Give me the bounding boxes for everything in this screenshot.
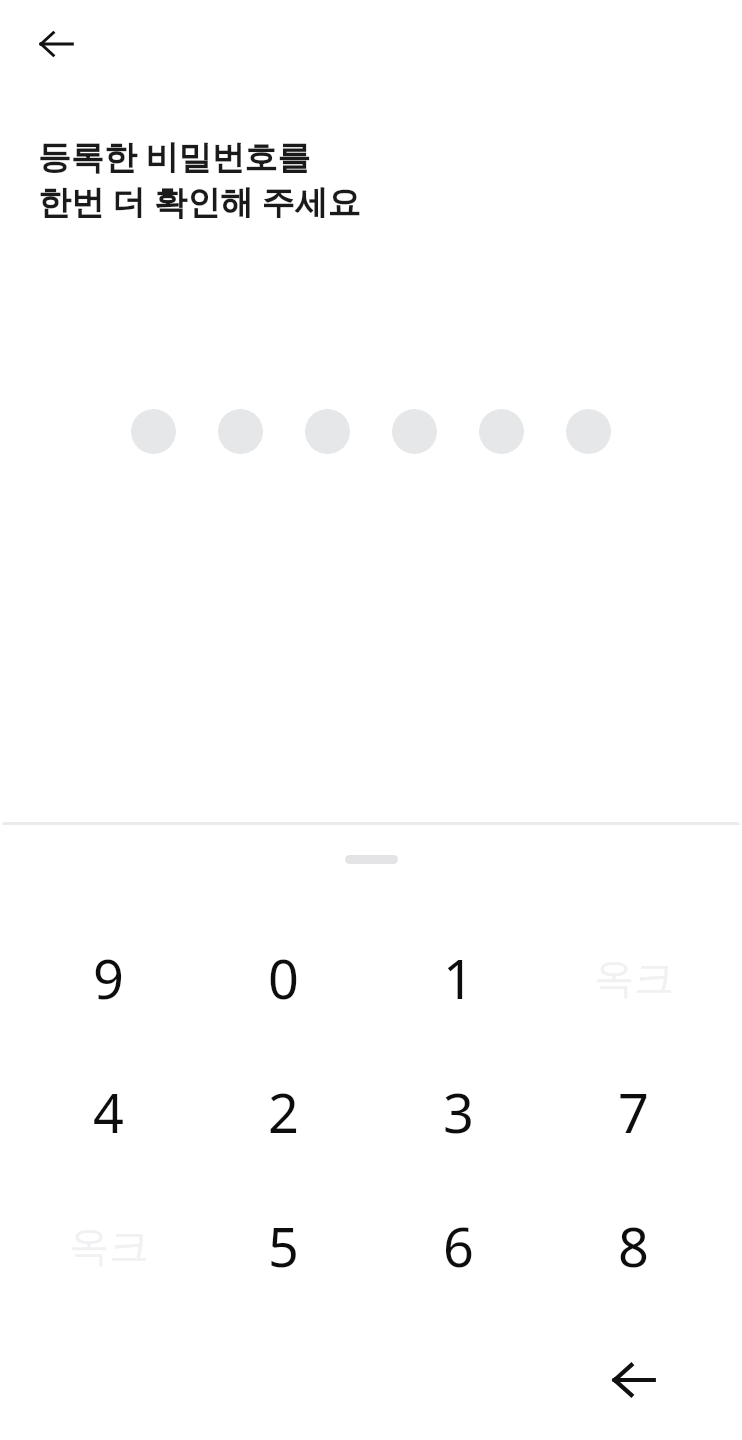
staticText: 1 [443, 941, 474, 1015]
staticText: 3 [443, 1075, 474, 1149]
staticText: 4 [93, 1075, 124, 1149]
button[interactable]: 0 [196, 911, 371, 1045]
staticText: 8 [618, 1209, 649, 1283]
button[interactable]: Backspace [546, 1313, 721, 1440]
staticText: 5 [268, 1209, 299, 1283]
staticText: 0 [268, 941, 299, 1015]
staticText: 옥크 [69, 1221, 149, 1271]
button[interactable]: 3 [371, 1045, 546, 1179]
button[interactable]: 8 [546, 1179, 721, 1313]
button[interactable]: 1 [371, 911, 546, 1045]
staticText: 2 [268, 1075, 299, 1149]
staticText: 한번 더 확인해 주세요 [38, 179, 361, 224]
button[interactable]: Back [20, 8, 92, 80]
staticText: 6 [443, 1209, 474, 1283]
button[interactable]: 6 [371, 1179, 546, 1313]
button[interactable]: 4 [21, 1045, 196, 1179]
staticText: 7 [618, 1075, 649, 1149]
button[interactable]: 5 [196, 1179, 371, 1313]
staticText: 9 [93, 941, 124, 1015]
staticText: 등록한 비밀번호를 [38, 134, 311, 179]
button[interactable]: 7 [546, 1045, 721, 1179]
button[interactable]: 9 [21, 911, 196, 1045]
staticText: 옥크 [594, 953, 674, 1003]
button[interactable]: 2 [196, 1045, 371, 1179]
